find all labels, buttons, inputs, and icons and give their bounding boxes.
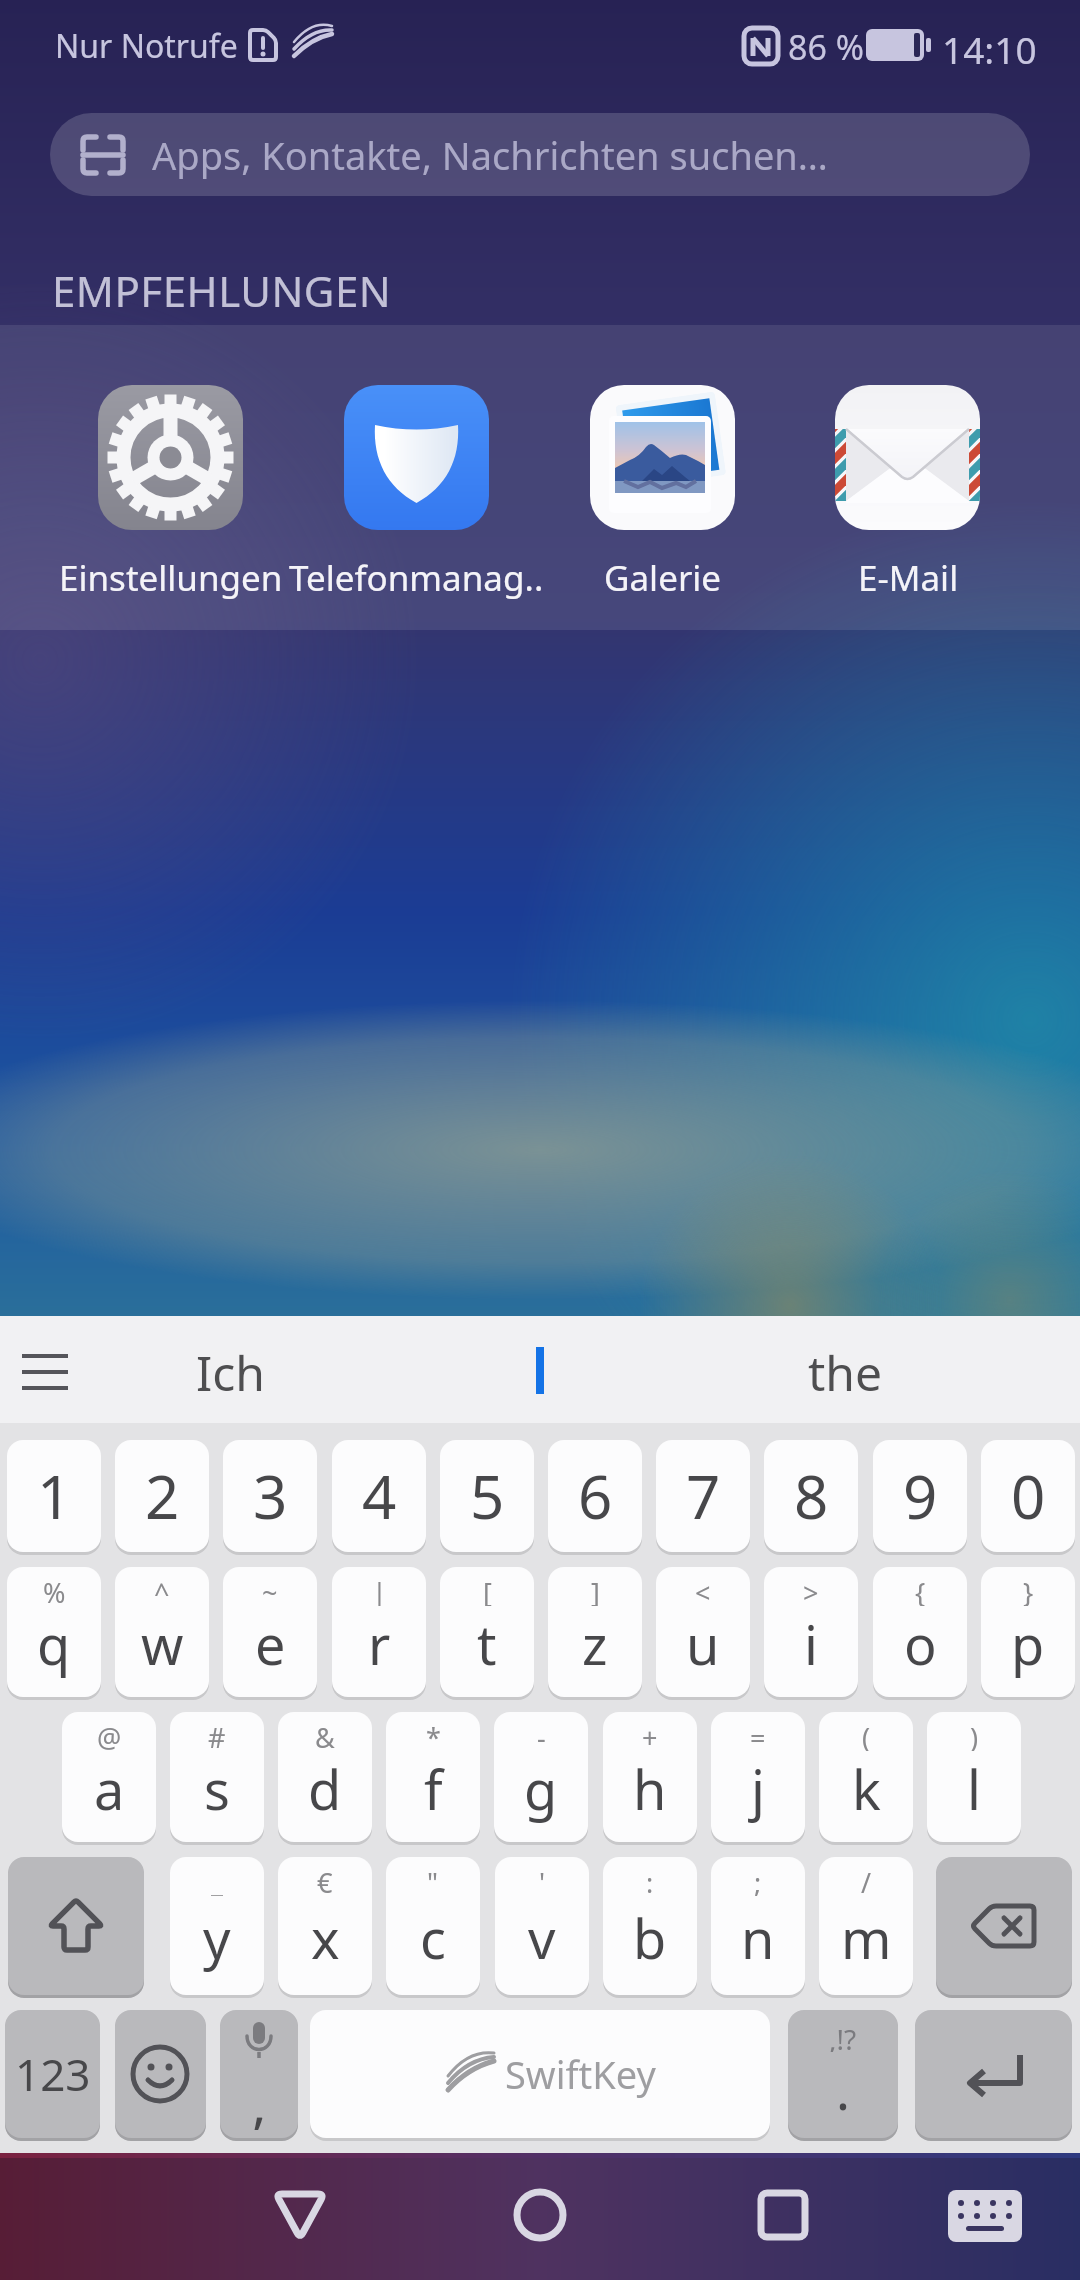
button[interactable] xyxy=(936,1857,1072,1995)
button[interactable]: [ xyxy=(440,1567,534,1697)
staticText: 2 xyxy=(145,1455,180,1537)
button[interactable] xyxy=(930,2168,1040,2258)
button[interactable]: # xyxy=(170,1712,264,1842)
button[interactable]: - xyxy=(494,1712,588,1842)
button[interactable]: ~ xyxy=(223,1567,317,1697)
button[interactable]: ' xyxy=(495,1857,589,1995)
button[interactable] xyxy=(733,2168,833,2258)
button[interactable]: SwiftKey xyxy=(310,2010,770,2138)
staticText: SwiftKey xyxy=(505,2048,656,2100)
staticText: * xyxy=(426,1719,441,1751)
staticText: 8 xyxy=(794,1455,829,1537)
staticText: 86 % xyxy=(788,24,864,66)
button[interactable]: " xyxy=(386,1857,480,1995)
staticText: Telefonmanag.. xyxy=(289,554,544,600)
button[interactable] xyxy=(250,2168,350,2258)
staticText: t xyxy=(477,1607,497,1681)
button[interactable]: / xyxy=(819,1857,913,1995)
button[interactable] xyxy=(344,385,489,530)
button[interactable]: ] xyxy=(548,1567,642,1697)
button[interactable]: < xyxy=(656,1567,750,1697)
button[interactable]: 9 xyxy=(873,1440,967,1552)
button[interactable]: { xyxy=(873,1567,967,1697)
staticText: ,!? xyxy=(829,2020,857,2052)
staticText: - xyxy=(537,1719,546,1751)
staticText: 3 xyxy=(253,1455,288,1537)
button[interactable]: 8 xyxy=(764,1440,858,1552)
button[interactable]: 5 xyxy=(440,1440,534,1552)
button[interactable]: @ xyxy=(62,1712,156,1842)
button[interactable]: * xyxy=(386,1712,480,1842)
button[interactable]: } xyxy=(981,1567,1075,1697)
staticText: f xyxy=(424,1752,443,1826)
staticText: g xyxy=(524,1752,558,1826)
button[interactable] xyxy=(490,2168,590,2258)
button[interactable]: € xyxy=(278,1857,372,1995)
staticText: k xyxy=(852,1752,881,1826)
button[interactable]: Apps, Kontakte, Nachrichten suchen… xyxy=(50,113,1030,196)
button[interactable]: 123 xyxy=(5,2010,100,2138)
button[interactable]: & xyxy=(278,1712,372,1842)
staticText: ^ xyxy=(154,1574,170,1606)
button[interactable]: 3 xyxy=(223,1440,317,1552)
button[interactable]: = xyxy=(711,1712,805,1842)
staticText: ] xyxy=(591,1574,600,1606)
button[interactable]: _ xyxy=(170,1857,264,1995)
staticText: " xyxy=(427,1864,439,1896)
staticText: h xyxy=(633,1752,667,1826)
button[interactable]: : xyxy=(603,1857,697,1995)
button[interactable]: | xyxy=(332,1567,426,1697)
button[interactable] xyxy=(14,1340,78,1400)
button[interactable] xyxy=(8,1857,144,1995)
button[interactable]: + xyxy=(603,1712,697,1842)
button[interactable] xyxy=(835,385,980,530)
button[interactable]: % xyxy=(7,1567,101,1697)
button[interactable]: 2 xyxy=(115,1440,209,1552)
staticText: Apps, Kontakte, Nachrichten suchen… xyxy=(152,129,828,181)
button[interactable]: ) xyxy=(927,1712,1021,1842)
button[interactable]: ( xyxy=(819,1712,913,1842)
button[interactable]: ^ xyxy=(115,1567,209,1697)
staticText: e xyxy=(255,1607,286,1681)
staticText: p xyxy=(1011,1607,1045,1681)
staticText: Galerie xyxy=(604,554,722,600)
staticText: l xyxy=(967,1752,981,1826)
button[interactable]: > xyxy=(764,1567,858,1697)
staticText: 14:10 xyxy=(942,24,1037,66)
button[interactable]: 4 xyxy=(332,1440,426,1552)
staticText: E-Mail xyxy=(858,554,959,600)
staticText: > xyxy=(803,1574,819,1606)
staticText: ' xyxy=(539,1864,546,1896)
button[interactable]: Ich xyxy=(120,1340,340,1400)
staticText: & xyxy=(315,1719,335,1751)
staticText: 6 xyxy=(578,1455,613,1537)
button[interactable]: ,!? xyxy=(788,2010,898,2138)
button[interactable]: 1 xyxy=(7,1440,101,1552)
staticText: = xyxy=(750,1719,766,1751)
staticText: s xyxy=(204,1752,230,1826)
staticText: z xyxy=(582,1607,608,1681)
button[interactable]: 0 xyxy=(981,1440,1075,1552)
button[interactable]: the xyxy=(735,1340,955,1400)
staticText: EMPFEHLUNGEN xyxy=(52,262,392,310)
staticText: # xyxy=(208,1719,226,1751)
staticText: < xyxy=(695,1574,711,1606)
staticText: Einstellungen xyxy=(59,554,283,600)
staticText: 123 xyxy=(15,2044,91,2104)
button[interactable]: 7 xyxy=(656,1440,750,1552)
button[interactable] xyxy=(915,2010,1072,2138)
button[interactable] xyxy=(115,2010,206,2138)
button[interactable]: , xyxy=(220,2010,298,2138)
button[interactable]: ; xyxy=(711,1857,805,1995)
button[interactable]: 6 xyxy=(548,1440,642,1552)
staticText: ~ xyxy=(262,1574,278,1606)
staticText: u xyxy=(686,1607,720,1681)
staticText: Ich xyxy=(196,1340,265,1400)
staticText: x xyxy=(311,1901,340,1975)
staticText: [ xyxy=(483,1574,492,1606)
staticText: ) xyxy=(970,1719,979,1751)
staticText: ; xyxy=(754,1864,762,1896)
button[interactable] xyxy=(98,385,243,530)
staticText: Nur Notrufe xyxy=(55,24,238,66)
button[interactable] xyxy=(590,385,735,530)
